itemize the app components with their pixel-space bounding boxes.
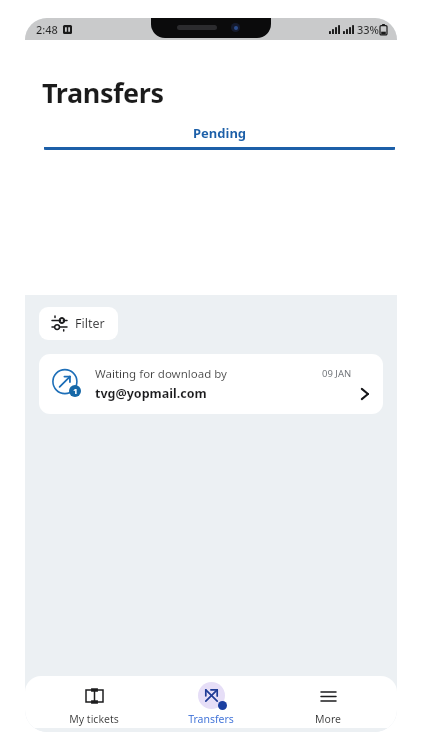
staticText: Filter bbox=[75, 315, 105, 332]
staticText: 33% bbox=[357, 22, 379, 37]
staticText: 1 bbox=[73, 386, 78, 396]
button[interactable]: Pending bbox=[42, 124, 397, 150]
staticText: 2:48 bbox=[36, 22, 58, 37]
staticText: Pending bbox=[193, 124, 247, 142]
button[interactable]: 1 bbox=[39, 354, 383, 414]
staticText: Transfers bbox=[42, 74, 164, 111]
staticText: More bbox=[315, 712, 341, 726]
staticText: Transfers bbox=[188, 712, 234, 726]
button[interactable]: Filter bbox=[39, 307, 118, 340]
other: My tickets bbox=[81, 683, 107, 709]
button[interactable]: Transfers bbox=[163, 676, 259, 728]
staticText: tvg@yopmail.com bbox=[95, 385, 207, 402]
other: Transfers bbox=[198, 682, 225, 709]
staticText: My tickets bbox=[69, 712, 119, 726]
button[interactable]: More bbox=[280, 676, 376, 728]
other: More bbox=[315, 683, 341, 709]
button[interactable]: My tickets bbox=[46, 676, 142, 728]
staticText: 09 JAN bbox=[322, 367, 370, 380]
staticText: Waiting for download by bbox=[95, 366, 227, 382]
